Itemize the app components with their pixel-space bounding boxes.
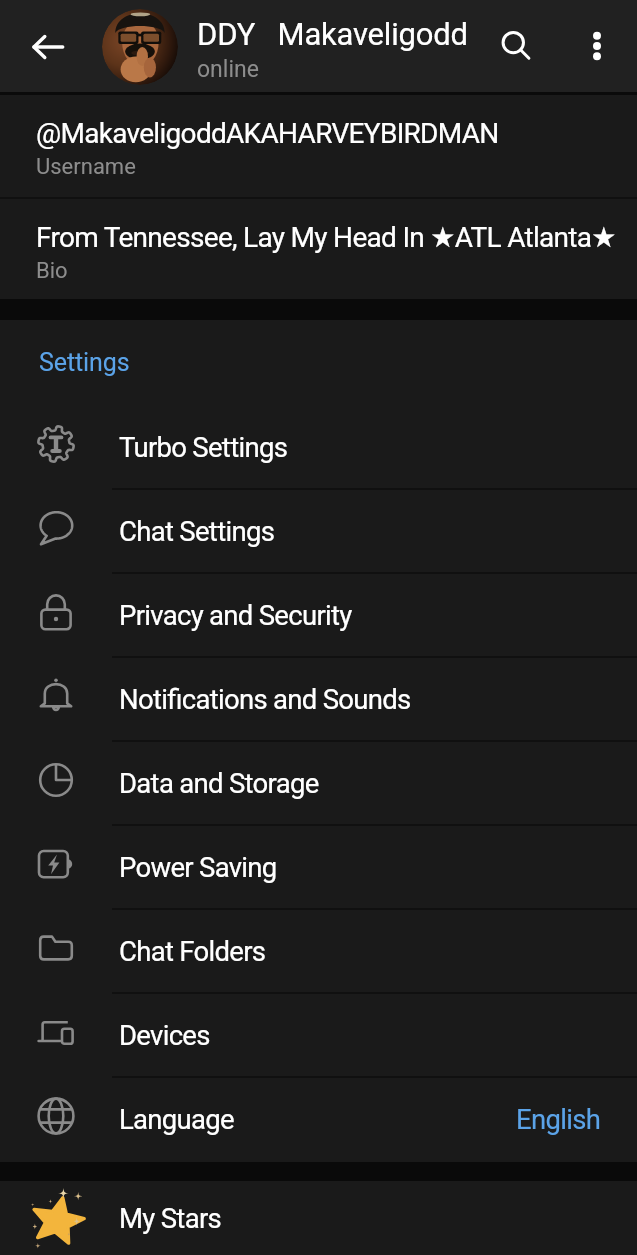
staticText: DDY Makaveligodd xyxy=(197,16,468,52)
button[interactable]: My Stars xyxy=(0,1181,637,1255)
staticText: @MakaveligoddAKAHARVEYBIRDMAN xyxy=(36,117,499,150)
button[interactable]: Devices xyxy=(0,994,637,1078)
button[interactable]: Notifications and Sounds xyxy=(0,658,637,742)
staticText: Chat Settings xyxy=(119,515,275,547)
staticText: Data and Storage xyxy=(119,767,319,799)
staticText: Username xyxy=(36,154,136,180)
staticText: Privacy and Security xyxy=(119,599,352,631)
staticText: My Stars xyxy=(119,1202,222,1234)
button[interactable]: @MakaveligoddAKAHARVEYBIRDMAN xyxy=(0,95,637,197)
button[interactable]: Privacy and Security xyxy=(0,574,637,658)
staticText: Turbo Settings xyxy=(119,431,288,463)
staticText: Bio xyxy=(36,258,68,284)
button[interactable]: Profile photo xyxy=(102,9,178,85)
button[interactable]: Search xyxy=(494,24,538,68)
staticText: Language xyxy=(119,1103,234,1135)
staticText: From Tennessee, Lay My Head In ★ATL Atla… xyxy=(36,221,616,254)
button[interactable]: Power Saving xyxy=(0,826,637,910)
button[interactable]: From Tennessee, Lay My Head In ★ATL Atla… xyxy=(0,199,637,299)
staticText: English xyxy=(516,1103,601,1135)
staticText: Notifications and Sounds xyxy=(119,683,411,715)
staticText: Settings xyxy=(39,348,130,377)
button[interactable]: Language xyxy=(0,1078,637,1162)
staticText: Devices xyxy=(119,1019,210,1051)
button[interactable]: Back xyxy=(32,31,64,63)
staticText: Chat Folders xyxy=(119,935,266,967)
staticText: Power Saving xyxy=(119,851,277,883)
button[interactable]: Chat Folders xyxy=(0,910,637,994)
button[interactable]: Chat Settings xyxy=(0,490,637,574)
staticText: online xyxy=(197,56,259,83)
button[interactable]: Turbo Settings xyxy=(0,406,637,490)
button[interactable]: Data and Storage xyxy=(0,742,637,826)
button[interactable]: More options xyxy=(575,24,619,68)
